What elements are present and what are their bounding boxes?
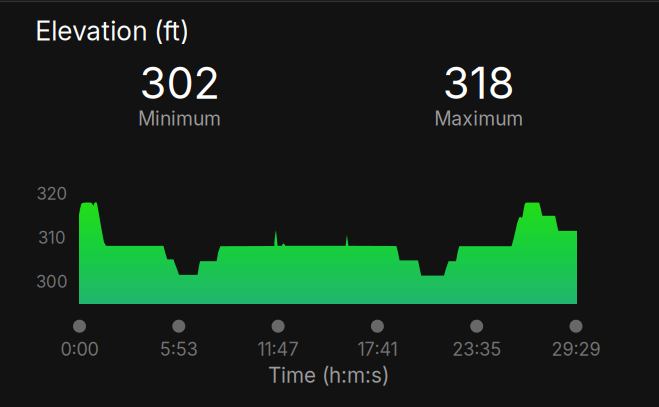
staticText: 23:35	[452, 338, 501, 360]
staticText: 5:53	[160, 338, 198, 360]
staticText: Elevation (ft)	[35, 15, 189, 47]
staticText: Minimum	[138, 107, 221, 130]
staticText: 310	[38, 227, 66, 248]
staticText: 29:29	[551, 338, 600, 360]
staticText: 17:41	[357, 338, 397, 360]
staticText: 318	[443, 57, 515, 109]
staticText: 11:47	[258, 338, 299, 360]
staticText: 0:00	[60, 338, 98, 360]
staticText: Time (h:m:s)	[268, 363, 389, 388]
staticText: 302	[140, 57, 220, 109]
staticText: Maximum	[434, 107, 523, 130]
staticText: 320	[36, 183, 67, 204]
staticText: 300	[36, 271, 68, 292]
